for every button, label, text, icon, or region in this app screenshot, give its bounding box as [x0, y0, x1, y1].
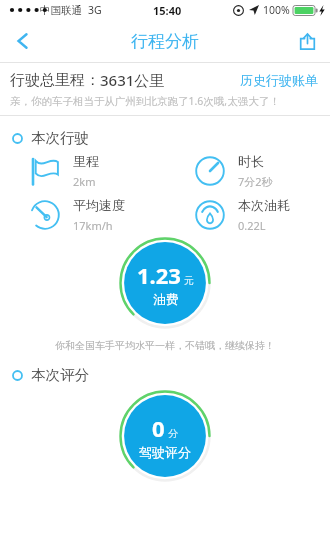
staticText: 你和全国车手平均水平一样，不错哦，继续保持！ [0, 339, 330, 352]
staticText: 元 [184, 274, 194, 287]
staticText: 0.22L [238, 218, 266, 233]
staticText: 3G [88, 3, 102, 17]
staticText: 17km/h [73, 218, 113, 233]
button[interactable]: 0 [119, 390, 211, 482]
staticText: 中国联通 [40, 4, 82, 17]
staticText: 时长 [238, 153, 264, 169]
staticText: 平均速度 [73, 197, 125, 213]
button[interactable]: 历史行驶账单 [238, 70, 320, 90]
staticText: 油费 [153, 291, 179, 307]
button[interactable]: 里程 [28, 153, 165, 189]
staticText: 行程分析 [131, 31, 199, 52]
button[interactable]: 平均速度 [28, 197, 165, 233]
button[interactable]: 本次油耗 [193, 197, 330, 233]
staticText: 3631公里 [100, 70, 165, 90]
staticText: 2km [73, 174, 96, 189]
staticText: 本次行驶 [31, 129, 89, 147]
staticText: 亲，你的车子相当于从广州到北京跑了1.6次哦,太强大了！ [10, 94, 280, 108]
button[interactable]: 1.23 [119, 237, 211, 329]
staticText: 100% [263, 3, 290, 17]
staticText: 15:40 [153, 3, 182, 18]
staticText: 驾驶评分 [139, 444, 191, 460]
staticText: 0 [152, 413, 165, 443]
staticText: 分 [168, 427, 178, 440]
button[interactable]: Back [0, 20, 46, 62]
staticText: 本次油耗 [238, 197, 290, 213]
staticText: 本次评分 [31, 366, 89, 384]
staticText: 1.23 [137, 260, 181, 290]
staticText: 里程 [73, 153, 99, 169]
button[interactable]: Share [284, 20, 330, 62]
staticText: 历史行驶账单 [240, 72, 318, 88]
button[interactable]: 时长 [193, 153, 330, 189]
staticText: 行驶总里程： [10, 71, 100, 90]
staticText: 7分2秒 [238, 174, 273, 189]
